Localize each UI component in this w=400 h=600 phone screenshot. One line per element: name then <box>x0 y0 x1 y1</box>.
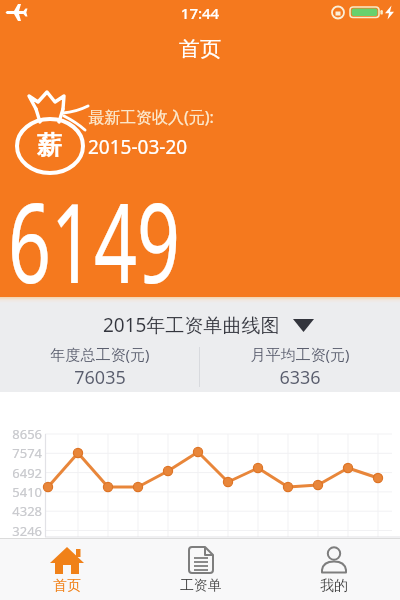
staticText: 2015-03-20 <box>88 134 308 160</box>
button[interactable]: 首页 <box>0 538 134 600</box>
staticText: 年度总工资(元) <box>0 344 200 364</box>
staticText: 76035 <box>0 365 200 390</box>
staticText: 月平均工资(元) <box>200 344 400 364</box>
staticText: 首页 <box>140 36 260 62</box>
staticText: 6336 <box>200 365 400 390</box>
staticText: 17:44 <box>150 3 250 23</box>
staticText: 6149 <box>8 165 180 315</box>
staticText: 薪 <box>37 130 77 161</box>
staticText: 5410 <box>0 483 42 501</box>
button[interactable]: 2015年工资单曲线图 <box>8 311 400 339</box>
staticText: 首页 <box>53 577 81 595</box>
staticText: 最新工资收入(元): <box>88 106 308 128</box>
staticText: 7574 <box>0 444 42 462</box>
staticText: 6492 <box>0 464 42 482</box>
staticText: 2015年工资单曲线图 <box>103 312 280 338</box>
button[interactable]: 工资单 <box>134 538 267 600</box>
button[interactable]: 我的 <box>267 538 400 600</box>
staticText: 工资单 <box>180 577 222 595</box>
staticText: 我的 <box>320 577 348 595</box>
staticText: 4328 <box>0 502 42 520</box>
staticText: 3246 <box>0 522 42 540</box>
staticText: 8656 <box>0 425 42 443</box>
